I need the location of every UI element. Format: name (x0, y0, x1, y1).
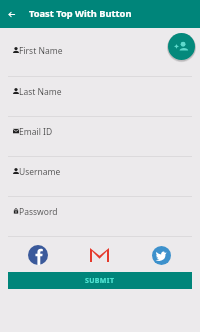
button[interactable]: Back (0, 0, 22, 28)
button[interactable]: Sign in with Gmail (90, 248, 109, 262)
button[interactable]: Email ID (0, 116, 200, 156)
button[interactable]: Add person (168, 33, 195, 60)
staticText: Email ID (19, 126, 53, 138)
staticText: SUBMIT (85, 276, 115, 286)
staticText: Toast Top With Button (29, 7, 132, 20)
button[interactable]: Sign in with Facebook (28, 245, 48, 265)
button[interactable]: Sign in with Twitter (152, 246, 171, 265)
button[interactable]: Password (0, 196, 200, 236)
staticText: First Name (19, 45, 63, 57)
staticText: Password (19, 206, 58, 218)
button[interactable]: Username (0, 156, 200, 196)
staticText: Username (19, 166, 61, 178)
button[interactable]: Last Name (0, 76, 200, 116)
button[interactable]: First Name (0, 28, 200, 76)
button[interactable]: SUBMIT (8, 272, 192, 289)
staticText: Last Name (19, 86, 62, 98)
